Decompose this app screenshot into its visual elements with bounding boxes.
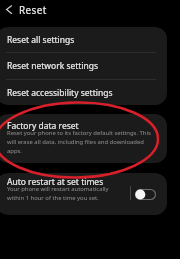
button[interactable]: Factory data reset (0, 114, 167, 163)
staticText: Reset your phone to its factory default … (7, 129, 159, 155)
button[interactable]: Reset all settings (0, 27, 167, 52)
staticText: Auto restart at set times (7, 176, 104, 188)
staticText: Reset all settings (7, 34, 75, 46)
staticText: Factory data reset (7, 120, 79, 132)
button[interactable]: Reset network settings (0, 53, 167, 79)
button[interactable]: Auto restart at set times, off (135, 189, 156, 200)
button[interactable]: Reset accessibility settings (0, 80, 167, 105)
staticText: Reset accessibility settings (7, 87, 113, 99)
button[interactable]: Navigate up (1, 2, 17, 18)
staticText: Reset (19, 3, 47, 16)
staticText: Reset network settings (7, 60, 99, 72)
staticText: Your phone will restart automatically wi… (7, 185, 124, 202)
